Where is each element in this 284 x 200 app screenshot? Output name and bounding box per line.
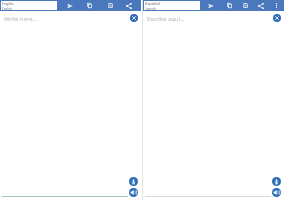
button[interactable]: Share	[121, 0, 137, 11]
button[interactable]: Paste	[237, 0, 253, 11]
button[interactable]: Send	[62, 0, 78, 11]
button[interactable]: More options	[268, 0, 284, 11]
button[interactable]: Copy	[81, 0, 97, 11]
button[interactable]: Inglés	[1, 1, 57, 10]
staticText: Write here...	[4, 15, 38, 23]
button[interactable]: Copy	[221, 0, 237, 11]
button[interactable]: Send	[203, 0, 219, 11]
button[interactable]: Español	[144, 1, 200, 10]
button[interactable]: Speak into microphone	[129, 177, 138, 186]
staticText: English	[2, 7, 13, 10]
button[interactable]: Listen	[129, 188, 138, 197]
button[interactable]: Clear text	[130, 14, 138, 22]
staticText: Escribe aquí...	[147, 15, 185, 23]
button[interactable]: Clear text	[273, 14, 281, 22]
staticText: Español	[145, 1, 161, 7]
button[interactable]: Share	[253, 0, 269, 11]
button[interactable]: Speak into microphone	[272, 177, 281, 186]
staticText: Spanish	[145, 7, 157, 10]
button[interactable]: Paste	[102, 0, 118, 11]
button[interactable]: Listen	[272, 188, 281, 197]
staticText: Inglés	[2, 1, 14, 7]
